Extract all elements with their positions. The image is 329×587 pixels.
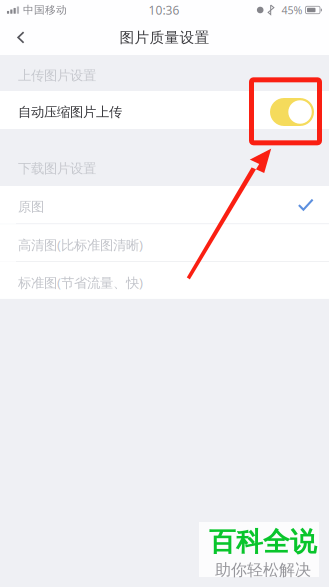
staticText: 助你轻松解决: [215, 560, 311, 580]
button[interactable]: 高清图(比标准图清晰): [0, 224, 329, 261]
staticText: 标准图(节省流量、快): [18, 273, 143, 291]
staticText: 45%: [281, 3, 302, 17]
staticText: 图片质量设置: [119, 28, 209, 47]
staticText: 自动压缩图片上传: [18, 104, 122, 120]
staticText: 高清图(比标准图清晰): [18, 236, 143, 254]
staticText: 中国移动: [20, 3, 67, 17]
staticText: 上传图片设置: [18, 67, 96, 84]
button[interactable]: Back: [0, 20, 42, 55]
button[interactable]: 原图: [0, 186, 329, 223]
staticText: 下载图片设置: [18, 160, 96, 177]
staticText: 10:36: [148, 2, 179, 18]
staticText: 原图: [18, 198, 44, 215]
staticText: 百科全说: [209, 525, 317, 559]
button[interactable]: 标准图(节省流量、快): [0, 262, 329, 299]
button[interactable]: 自动压缩图片上传: [0, 91, 329, 129]
